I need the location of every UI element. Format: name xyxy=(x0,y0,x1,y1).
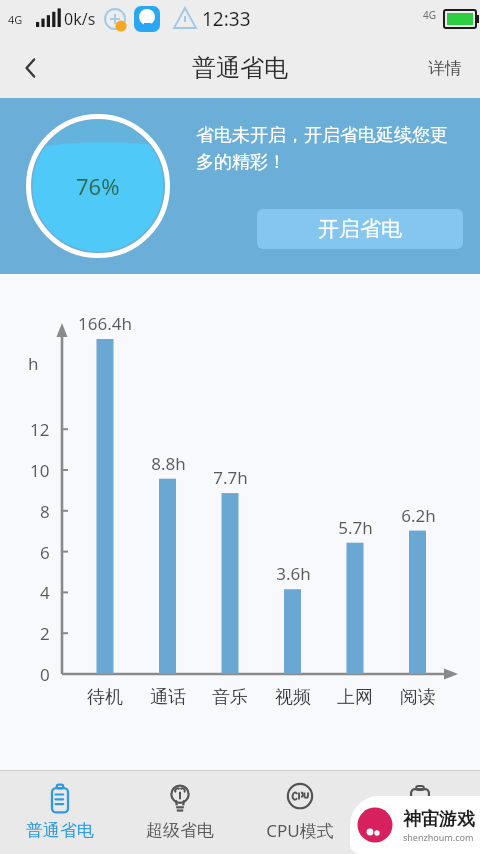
staticText: 上网 xyxy=(337,686,373,709)
button[interactable]: 超级省电 xyxy=(120,770,240,854)
staticText: 超级省电 xyxy=(146,820,214,841)
staticText: 阅读 xyxy=(400,686,436,709)
staticText: 4G xyxy=(423,8,436,22)
staticText: 6 xyxy=(40,541,50,564)
staticText: 开启省电 xyxy=(318,216,402,242)
staticText: 166.4h xyxy=(78,312,132,335)
staticText: 6.2h xyxy=(401,504,436,527)
staticText: 普通省电 xyxy=(26,820,94,841)
staticText: 4 xyxy=(40,581,50,604)
staticText: 详情 xyxy=(428,58,462,79)
staticText: 5.7h xyxy=(338,516,373,539)
button[interactable]: 普通省电 xyxy=(0,770,120,854)
staticText: 音乐 xyxy=(212,686,248,709)
staticText: 76% xyxy=(76,171,120,201)
staticText: 3.6h xyxy=(276,562,311,585)
button[interactable]: Back xyxy=(0,38,62,98)
staticText: 视频 xyxy=(275,686,311,709)
staticText: 通话 xyxy=(150,686,186,709)
staticText: 待机 xyxy=(87,686,123,709)
button[interactable]: CPU模式 xyxy=(240,770,360,854)
staticText: 12:33 xyxy=(202,6,251,32)
staticText: 7.7h xyxy=(213,466,248,489)
staticText: 神宙游戏 xyxy=(403,808,475,831)
staticText: 省电未开启，开启省电延续您更多的精彩！ xyxy=(196,124,462,174)
staticText: 12 xyxy=(30,418,50,441)
staticText: 0k/s xyxy=(64,8,96,30)
staticText: shenzhoum.com xyxy=(403,831,474,843)
staticText: 0 xyxy=(40,663,50,686)
staticText: 10 xyxy=(30,459,50,482)
staticText: h xyxy=(28,352,39,375)
button[interactable]: More xyxy=(360,770,480,854)
staticText: CPU模式 xyxy=(266,819,334,842)
button[interactable]: 开启省电 xyxy=(257,209,463,249)
button[interactable]: 详情 xyxy=(410,38,480,98)
staticText: 普通省电 xyxy=(192,53,288,83)
staticText: 4G xyxy=(8,12,23,27)
staticText: 8.8h xyxy=(151,452,186,475)
staticText: 2 xyxy=(40,622,50,645)
staticText: 8 xyxy=(40,500,50,523)
